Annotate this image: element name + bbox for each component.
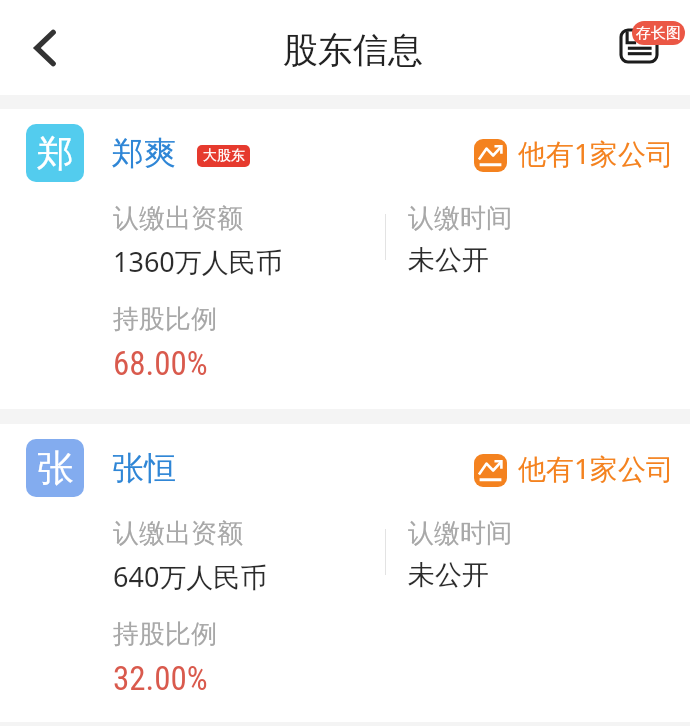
button[interactable]: Back	[8, 13, 78, 83]
staticText: 未公开	[408, 558, 489, 592]
staticText: 郑	[37, 130, 74, 177]
staticText: 存长图	[636, 24, 681, 43]
staticText: 持股比例	[113, 618, 217, 651]
staticText: 张恒	[112, 448, 176, 488]
staticText: 郑爽	[112, 133, 176, 173]
button[interactable]: 他有1家公司	[474, 134, 675, 172]
staticText: 1360万人民币	[113, 243, 283, 280]
staticText: 他有1家公司	[518, 449, 675, 487]
staticText: 68.00%	[113, 344, 208, 383]
staticText: 640万人民币	[113, 558, 268, 595]
staticText: 认缴出资额	[113, 202, 243, 235]
staticText: 他有1家公司	[518, 134, 675, 172]
staticText: 大股东	[203, 147, 245, 165]
staticText: 张	[37, 445, 74, 492]
staticText: 认缴时间	[408, 517, 512, 550]
staticText: 股东信息	[283, 28, 423, 72]
button[interactable]: 郑	[0, 109, 690, 409]
button[interactable]: 张	[0, 424, 690, 722]
staticText: 未公开	[408, 243, 489, 277]
staticText: 持股比例	[113, 303, 217, 336]
button[interactable]: 他有1家公司	[474, 449, 675, 487]
staticText: 认缴出资额	[113, 517, 243, 550]
staticText: 32.00%	[113, 659, 208, 698]
staticText: 认缴时间	[408, 202, 512, 235]
button[interactable]: 存长图	[598, 5, 684, 91]
